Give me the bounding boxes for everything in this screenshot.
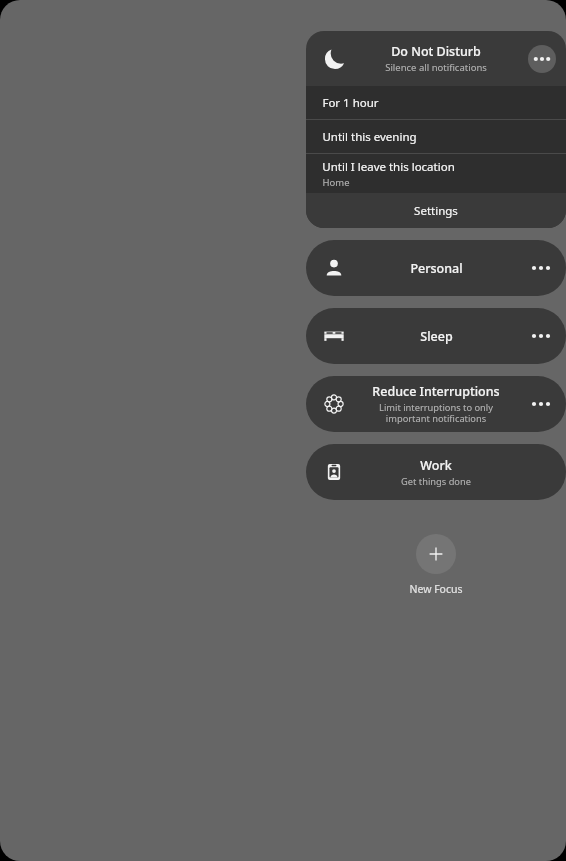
staticText: Silence all notifications bbox=[385, 61, 487, 74]
button[interactable]: Sleep bbox=[306, 308, 566, 364]
button[interactable]: For 1 hour bbox=[306, 86, 566, 119]
staticText: Reduce Interruptions bbox=[372, 383, 500, 400]
staticText: Work bbox=[420, 457, 452, 474]
button[interactable]: Personal bbox=[306, 240, 566, 296]
button[interactable]: More options for Sleep bbox=[528, 323, 554, 349]
button[interactable]: Do Not Disturb bbox=[306, 31, 566, 86]
staticText: Limit interruptions to only important no… bbox=[379, 401, 493, 425]
button[interactable]: Settings bbox=[306, 193, 566, 228]
staticText: New Focus bbox=[409, 582, 463, 596]
button[interactable]: Work bbox=[306, 444, 566, 500]
staticText: Until this evening bbox=[322, 129, 417, 145]
staticText: Personal bbox=[410, 260, 463, 277]
button[interactable]: More options for Personal bbox=[528, 255, 554, 281]
staticText: Do Not Disturb bbox=[391, 43, 481, 60]
button[interactable]: New Focus bbox=[416, 534, 456, 574]
button[interactable]: Until I leave this location bbox=[306, 154, 566, 193]
staticText: Home bbox=[322, 176, 350, 189]
button[interactable]: More options bbox=[528, 45, 556, 73]
staticText: Sleep bbox=[420, 328, 453, 345]
staticText: Until I leave this location bbox=[322, 159, 455, 175]
staticText: For 1 hour bbox=[322, 95, 379, 111]
button[interactable]: Until this evening bbox=[306, 120, 566, 153]
button[interactable]: Reduce Interruptions bbox=[306, 376, 566, 432]
staticText: Settings bbox=[414, 203, 458, 219]
staticText: Get things done bbox=[401, 475, 471, 488]
button[interactable]: More options for Reduce Interruptions bbox=[528, 391, 554, 417]
